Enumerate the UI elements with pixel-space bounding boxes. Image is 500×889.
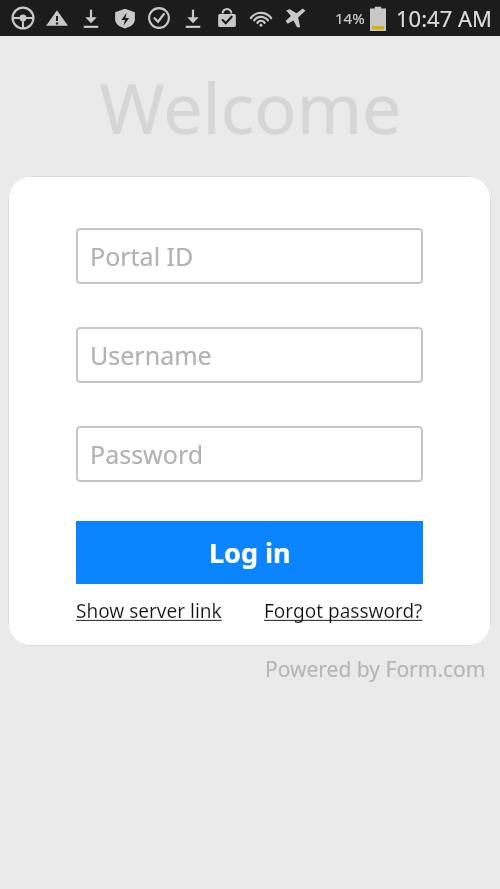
- staticText: Log in: [209, 534, 291, 571]
- staticText: Powered by Form.com: [265, 655, 486, 684]
- staticText: Username: [90, 338, 212, 372]
- staticText: Password: [90, 437, 204, 471]
- button[interactable]: Username: [76, 327, 423, 383]
- button[interactable]: Forgot password?: [264, 594, 423, 628]
- staticText: 10:47 AM: [396, 3, 492, 33]
- button[interactable]: Log in: [76, 521, 423, 584]
- button[interactable]: Password: [76, 426, 423, 482]
- staticText: Forgot password?: [264, 598, 423, 624]
- staticText: 14%: [335, 8, 365, 28]
- staticText: Welcome: [99, 59, 402, 154]
- button[interactable]: Portal ID: [76, 228, 423, 284]
- button[interactable]: Show server link: [76, 594, 222, 628]
- staticText: Show server link: [76, 598, 222, 624]
- staticText: Portal ID: [90, 239, 194, 273]
